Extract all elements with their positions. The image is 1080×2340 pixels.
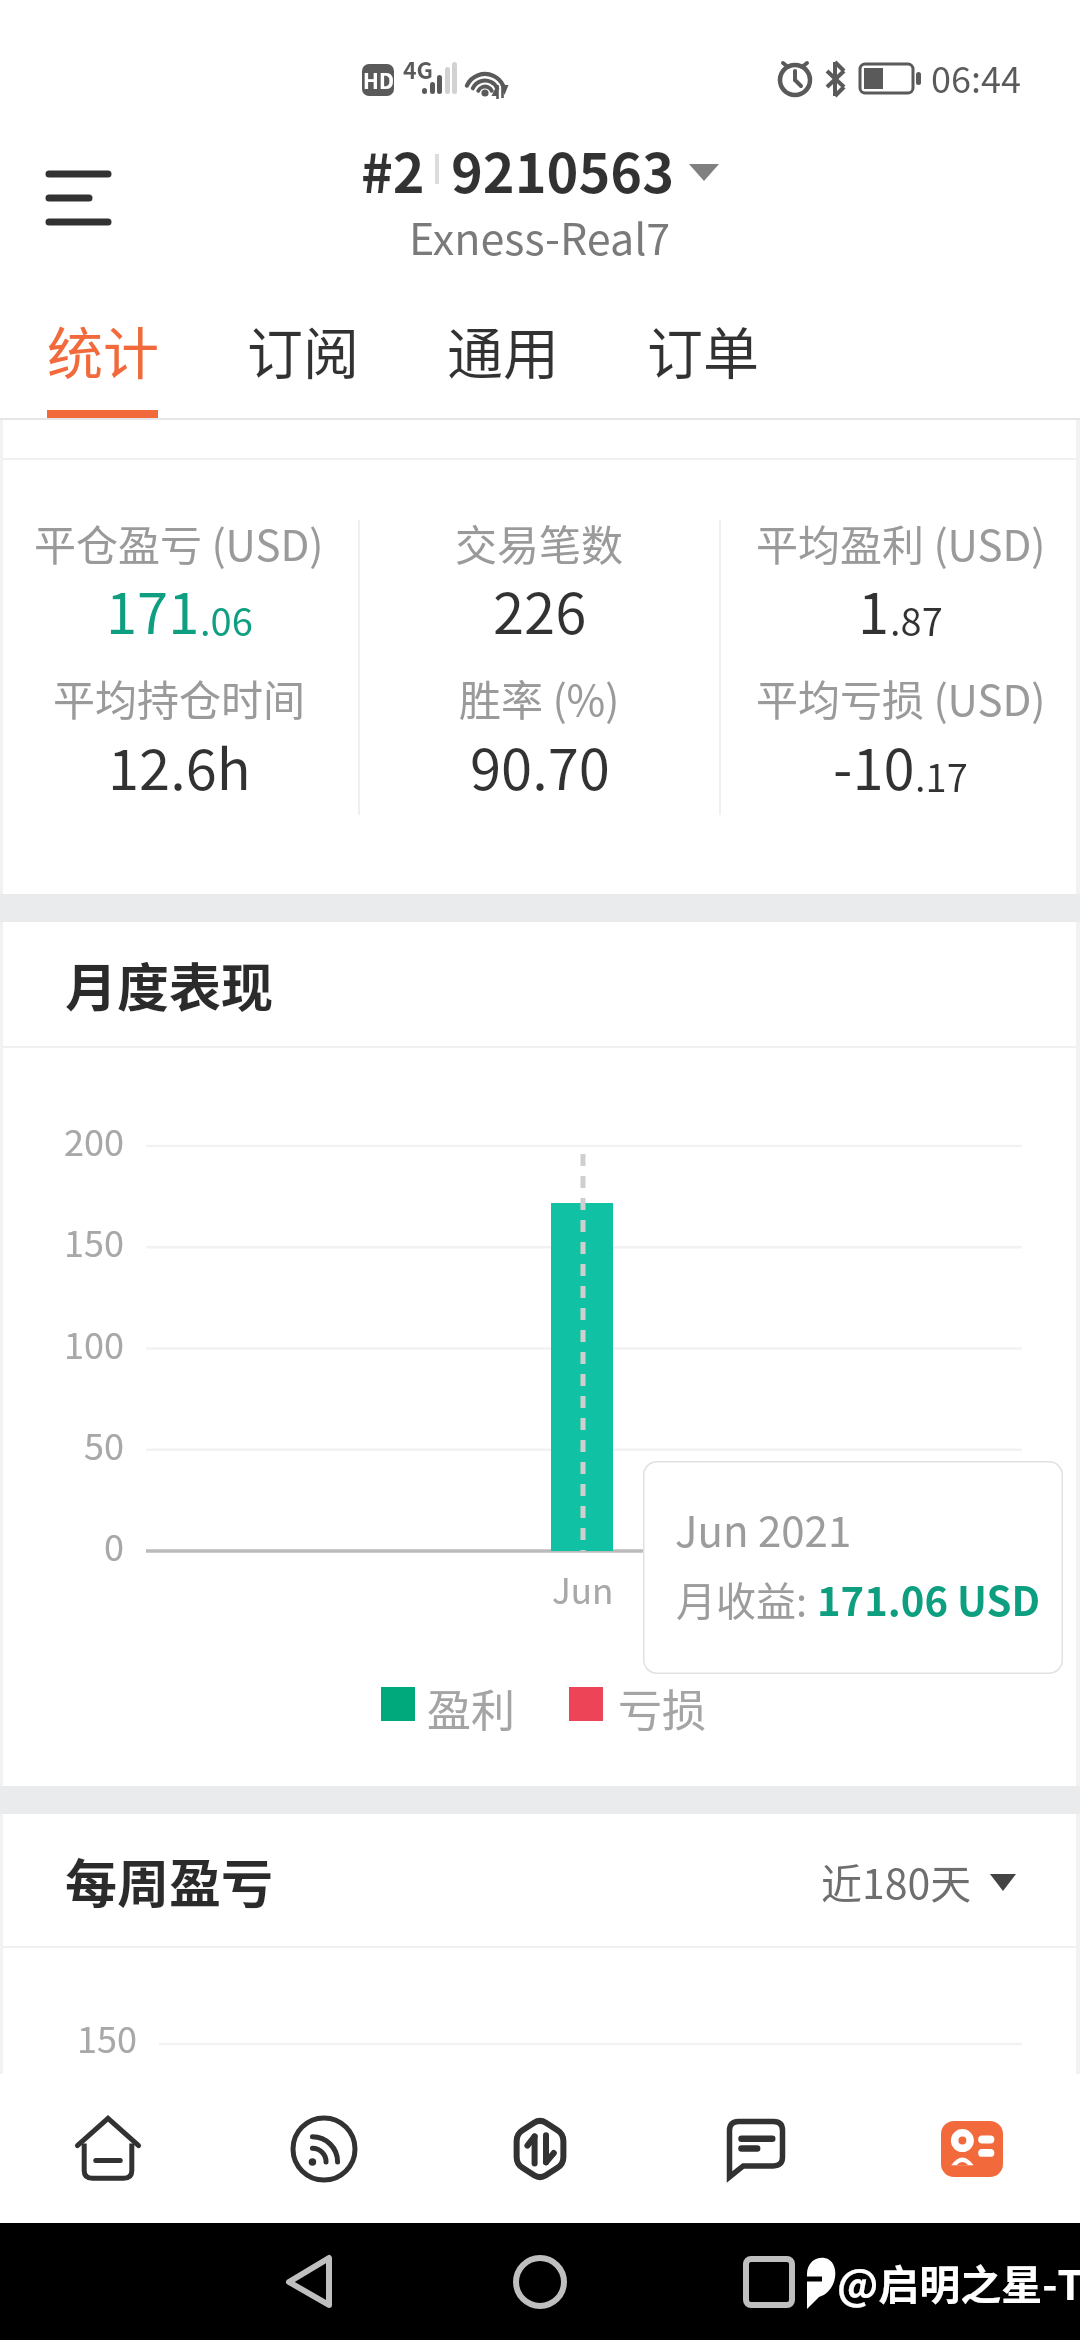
staticText: 50 [0,1418,124,1470]
staticText: 0 [0,1519,124,1571]
button[interactable]: Messages [648,2074,864,2223]
staticText: 171 [106,569,200,650]
staticText: 100 [0,1317,124,1369]
button[interactable]: 近180天 [821,1851,1016,1910]
staticText: 亏损 [618,1676,706,1740]
staticText: 盈利 [427,1676,515,1740]
staticText: 1 [858,569,890,650]
staticText: 交易笔数 [455,512,624,573]
button[interactable]: Trade [432,2074,648,2223]
staticText: 订单 [647,309,759,390]
staticText: 胜率 (%) [459,667,620,728]
staticText: .87 [890,592,943,647]
staticText: Jun [552,1563,614,1614]
button[interactable]: Home [0,2074,216,2223]
staticText: 150 [0,1215,124,1267]
staticText: 06:44 [931,51,1021,103]
staticText: 12.6h [108,725,251,806]
staticText: 150 [77,2011,137,2063]
staticText: 月度表现 [65,947,274,1022]
button[interactable]: Menu [30,151,126,237]
staticText: 平仓盈亏 (USD) [34,512,324,573]
staticText: Exness-Real7 [409,205,671,267]
staticText: Jun 2021 [675,1498,852,1559]
staticText: -10 [833,725,915,806]
button[interactable]: 通用 [400,279,600,420]
button[interactable]: Home [500,2247,580,2317]
staticText: 226 [493,569,587,650]
button[interactable]: Recents [736,2247,806,2317]
button[interactable]: 订单 [600,279,800,420]
button[interactable]: Back [270,2247,350,2317]
staticText: 订阅 [247,309,359,390]
staticText: @启明之星-Ti [837,2252,1080,2311]
staticText: 通用 [447,309,559,390]
staticText: 200 [0,1114,124,1166]
staticText: .17 [915,748,968,803]
staticText: 月收益: [676,1570,817,1628]
staticText: 171.06 USD [817,1570,1041,1628]
staticText: HD [363,65,394,95]
staticText: .06 [200,592,253,647]
staticText: 平均盈利 (USD) [756,512,1046,573]
staticText: 4G [403,52,434,85]
staticText: 90.70 [470,725,610,806]
staticText: 平均持仓时间 [53,667,306,728]
staticText: 近180天 [821,1851,972,1910]
button[interactable]: Accounts [864,2074,1080,2223]
button[interactable]: Signals [216,2074,432,2223]
button[interactable]: 订阅 [200,279,400,420]
button[interactable]: 统计 [0,279,200,420]
staticText: 每周盈亏 [65,1843,274,1918]
staticText: 平均亏损 (USD) [756,667,1046,728]
staticText: #2 [361,130,425,208]
staticText: 9210563 [451,130,675,208]
staticText: 统计 [47,309,159,390]
